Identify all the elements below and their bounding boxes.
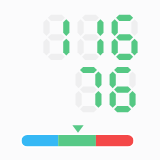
button[interactable]: Blood pressure 116 over 76, normal — [0, 0, 160, 160]
